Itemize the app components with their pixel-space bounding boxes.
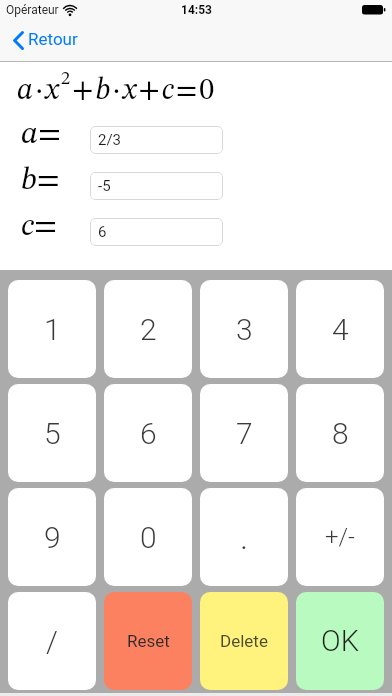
staticText: 9 (44, 520, 61, 555)
staticText: 8 (332, 416, 349, 451)
button[interactable]: 4 (296, 280, 384, 378)
staticText: 6 (140, 416, 157, 451)
staticText: +/- (325, 523, 355, 551)
button[interactable]: 7 (200, 384, 288, 482)
staticText: b= (21, 165, 60, 197)
button[interactable]: OK (296, 592, 384, 690)
button[interactable]: 9 (8, 488, 96, 586)
staticText: 2/3 (98, 131, 122, 149)
staticText: Delete (220, 631, 268, 651)
button[interactable]: 2/3 (90, 126, 223, 154)
button[interactable]: . (200, 488, 288, 586)
staticText: a= (21, 119, 62, 151)
button[interactable]: -5 (90, 172, 223, 200)
staticText: 0 (140, 520, 157, 555)
staticText: 6 (98, 223, 107, 241)
staticText: 7 (236, 416, 253, 451)
button[interactable]: Delete (200, 592, 288, 690)
button[interactable]: Reset (104, 592, 192, 690)
button[interactable]: 3 (200, 280, 288, 378)
button[interactable]: Retour (8, 28, 88, 54)
staticText: Retour (28, 29, 78, 49)
staticText: -5 (98, 177, 111, 195)
staticText: 2 (140, 312, 157, 347)
staticText: 3 (236, 312, 253, 347)
button[interactable]: 1 (8, 280, 96, 378)
staticText: . (240, 517, 249, 557)
staticText: 4 (332, 312, 349, 347)
button[interactable]: +/- (296, 488, 384, 586)
button[interactable]: 5 (8, 384, 96, 482)
staticText: Opérateur (6, 3, 59, 17)
button[interactable]: / (8, 592, 96, 690)
staticText: a·x2+b·x+c=0 (17, 70, 217, 106)
button[interactable]: 6 (90, 218, 223, 246)
staticText: 14:53 (181, 3, 212, 17)
staticText: 1 (44, 312, 61, 347)
staticText: OK (321, 624, 359, 658)
staticText: / (46, 624, 58, 659)
staticText: Reset (127, 631, 170, 651)
button[interactable]: 8 (296, 384, 384, 482)
button[interactable]: 2 (104, 280, 192, 378)
button[interactable]: 0 (104, 488, 192, 586)
button[interactable]: 6 (104, 384, 192, 482)
staticText: 5 (44, 416, 61, 451)
staticText: c= (21, 211, 58, 243)
